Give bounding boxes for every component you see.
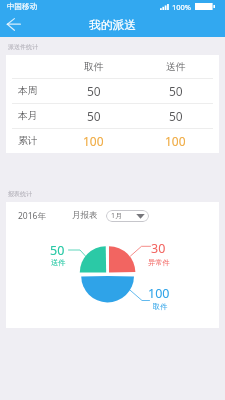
staticText: 2016年 [18,210,46,222]
staticText: 取件 [84,61,104,73]
staticText: 我的派送 [89,18,137,33]
staticText: 50 [87,83,101,99]
staticText: 取件 [153,302,168,311]
staticText: 派送件统计 [8,43,38,51]
staticText: 月报表 [72,210,98,221]
staticText: 本周 [18,85,38,97]
staticText: 100 [148,285,170,302]
staticText: 50 [169,108,183,124]
staticText: 100 [83,133,104,149]
staticText: 报表统计 [8,190,32,198]
staticText: 30 [151,240,166,257]
staticText: 本月 [18,110,38,122]
staticText: 100 [165,133,186,149]
button[interactable]: 1月 [106,210,149,222]
staticText: 送件 [166,61,186,73]
staticText: 1月 [111,211,123,221]
staticText: 50 [169,83,183,99]
staticText: 50 [50,242,65,259]
staticText: 100% [172,2,192,12]
staticText: 累计 [18,135,38,147]
staticText: 中国移动 [7,2,37,11]
button[interactable]: Back [0,13,28,37]
staticText: 异常件 [148,258,170,267]
staticText: 50 [87,108,101,124]
staticText: 送件 [51,258,66,267]
